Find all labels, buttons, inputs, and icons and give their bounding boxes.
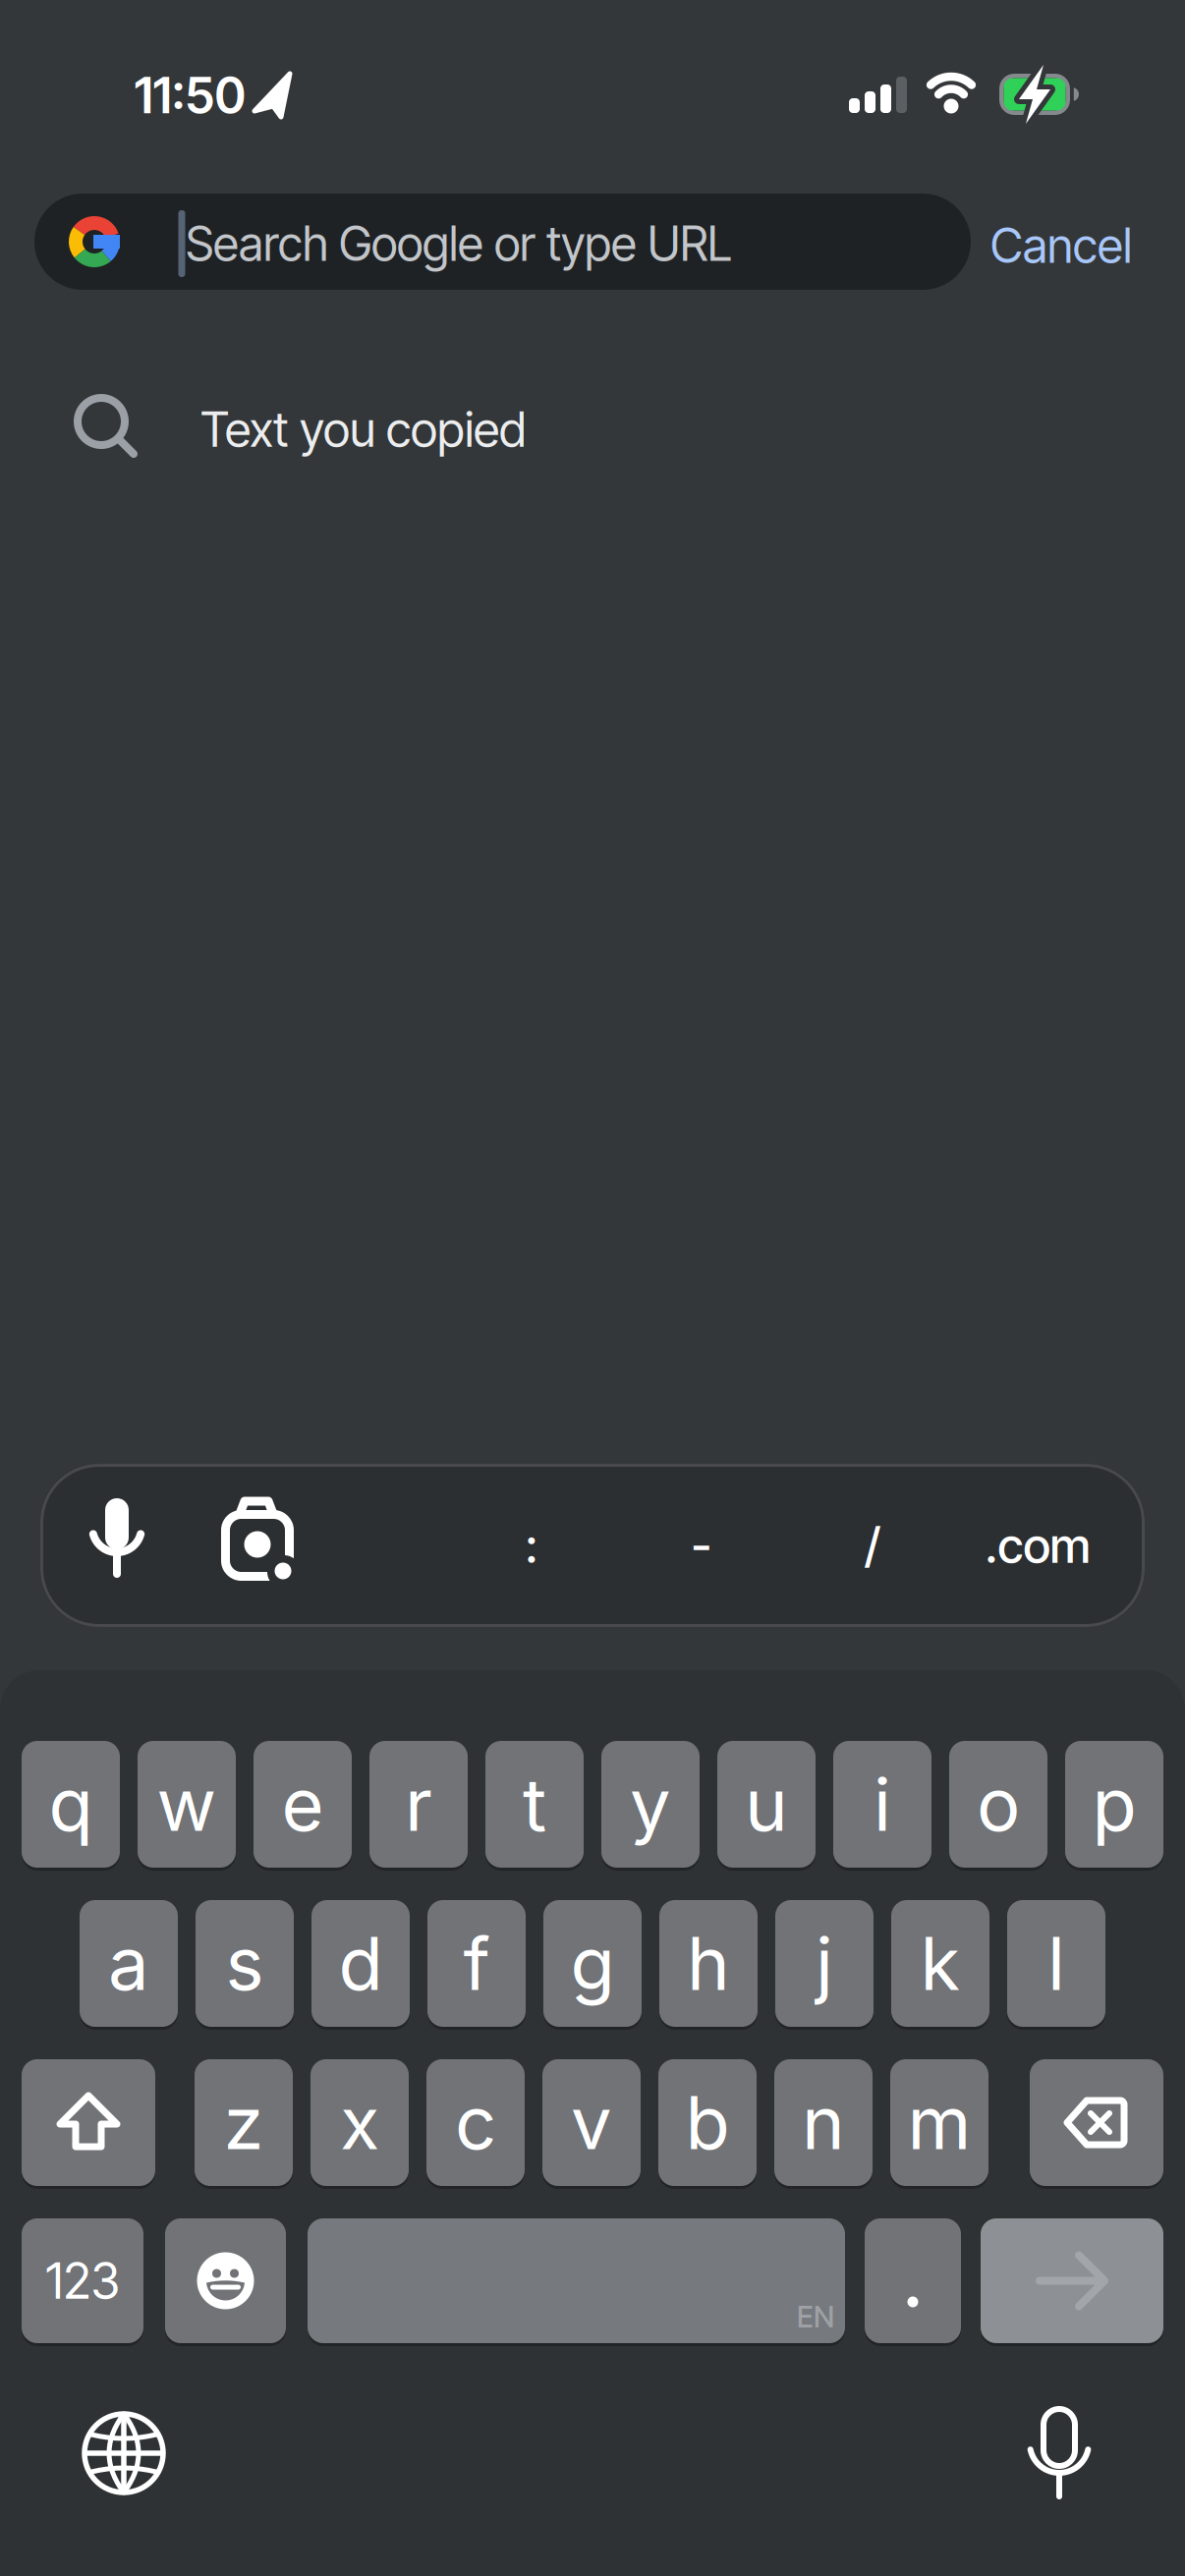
- staticText: r: [405, 1760, 432, 1848]
- button[interactable]: Shift: [22, 2059, 155, 2186]
- staticText: Text you copied: [200, 400, 527, 459]
- button[interactable]: a: [80, 1900, 178, 2027]
- button[interactable]: .com: [964, 1464, 1111, 1627]
- button[interactable]: w: [138, 1741, 236, 1868]
- button[interactable]: z: [195, 2059, 293, 2186]
- staticText: m: [907, 2079, 971, 2167]
- button[interactable]: l: [1007, 1900, 1105, 2027]
- button[interactable]: e: [254, 1741, 352, 1868]
- staticText: u: [745, 1760, 788, 1848]
- button[interactable]: y: [601, 1741, 700, 1868]
- staticText: a: [108, 1919, 149, 2007]
- staticText: Search Google or type URL: [186, 215, 732, 272]
- button[interactable]: Next keyboard: [50, 2380, 197, 2527]
- button[interactable]: o: [949, 1741, 1047, 1868]
- button[interactable]: Google Lens search: [198, 1464, 316, 1627]
- staticText: :: [525, 1516, 538, 1575]
- button[interactable]: r: [369, 1741, 468, 1868]
- button[interactable]: x: [310, 2059, 409, 2186]
- staticText: c: [455, 2079, 496, 2167]
- staticText: o: [977, 1760, 1020, 1848]
- staticText: h: [687, 1919, 730, 2007]
- button[interactable]: j: [775, 1900, 874, 2027]
- button[interactable]: c: [426, 2059, 525, 2186]
- button[interactable]: n: [774, 2059, 873, 2186]
- button[interactable]: /: [799, 1464, 946, 1627]
- staticText: -: [691, 1516, 712, 1575]
- staticText: .com: [985, 1516, 1090, 1575]
- button[interactable]: Delete: [1030, 2059, 1163, 2186]
- staticText: d: [339, 1919, 383, 2007]
- staticText: n: [802, 2079, 845, 2167]
- staticText: z: [224, 2079, 264, 2167]
- button[interactable]: b: [658, 2059, 757, 2186]
- staticText: f: [463, 1919, 490, 2007]
- button[interactable]: s: [196, 1900, 294, 2027]
- staticText: 123: [46, 2251, 119, 2311]
- button[interactable]: Cancel: [990, 217, 1132, 274]
- button[interactable]: 123: [22, 2218, 143, 2343]
- staticText: w: [157, 1760, 217, 1848]
- staticText: s: [226, 1919, 264, 2007]
- button[interactable]: -: [628, 1464, 775, 1627]
- staticText: g: [570, 1919, 615, 2007]
- button[interactable]: :: [458, 1464, 605, 1627]
- staticText: j: [816, 1919, 833, 2007]
- button[interactable]: Period: [865, 2218, 961, 2343]
- button[interactable]: m: [890, 2059, 988, 2186]
- button[interactable]: h: [659, 1900, 758, 2027]
- staticText: b: [685, 2079, 730, 2167]
- button[interactable]: u: [717, 1741, 816, 1868]
- button[interactable]: Text you copied: [0, 360, 1185, 497]
- button[interactable]: v: [542, 2059, 641, 2186]
- button[interactable]: p: [1065, 1741, 1163, 1868]
- staticText: i: [874, 1760, 891, 1848]
- staticText: Cancel: [990, 217, 1132, 274]
- staticText: t: [523, 1760, 546, 1848]
- staticText: /: [865, 1516, 880, 1575]
- staticText: l: [1047, 1919, 1065, 2007]
- staticText: p: [1092, 1760, 1136, 1848]
- button[interactable]: d: [311, 1900, 410, 2027]
- button[interactable]: i: [833, 1741, 931, 1868]
- staticText: y: [630, 1760, 671, 1848]
- staticText: e: [282, 1760, 324, 1848]
- button[interactable]: k: [891, 1900, 989, 2027]
- staticText: EN: [797, 2299, 834, 2335]
- button[interactable]: q: [22, 1741, 120, 1868]
- staticText: x: [340, 2079, 379, 2167]
- button[interactable]: Dictation: [986, 2379, 1133, 2526]
- staticText: v: [571, 2079, 612, 2167]
- button[interactable]: t: [485, 1741, 584, 1868]
- staticText: 11:50: [134, 66, 245, 125]
- button[interactable]: Voice search: [58, 1464, 176, 1627]
- button[interactable]: Emoji: [165, 2218, 286, 2343]
- staticText: q: [49, 1760, 93, 1848]
- button[interactable]: Go: [981, 2218, 1163, 2343]
- button[interactable]: Space: [308, 2218, 845, 2343]
- button[interactable]: f: [427, 1900, 526, 2027]
- staticText: k: [920, 1919, 960, 2007]
- button[interactable]: g: [543, 1900, 642, 2027]
- button[interactable]: Search Google or type URL: [34, 194, 971, 290]
